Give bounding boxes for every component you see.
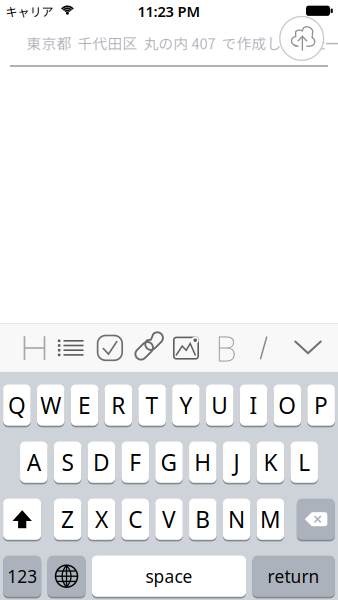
button[interactable]: P [307, 383, 335, 427]
button[interactable] [3, 498, 41, 541]
button[interactable] [297, 498, 335, 541]
staticText: U [211, 390, 228, 420]
staticText: Y [179, 390, 192, 420]
button[interactable]: space [92, 555, 246, 598]
staticText: return [268, 565, 320, 588]
button[interactable]: O [274, 383, 301, 427]
staticText: O [278, 390, 296, 420]
staticText: T [146, 390, 159, 420]
button[interactable]: 123 [3, 555, 41, 598]
staticText: F [129, 447, 141, 477]
button[interactable] [96, 334, 124, 361]
staticText: 11:23 PM [137, 2, 200, 21]
button[interactable] [257, 335, 271, 360]
staticText: E [78, 390, 91, 420]
staticText: I [249, 390, 257, 420]
button[interactable]: R [105, 383, 132, 427]
staticText: Q [8, 390, 26, 420]
button[interactable]: V [155, 498, 183, 541]
button[interactable]: J [223, 441, 250, 484]
button[interactable] [134, 333, 164, 361]
staticText: B [195, 504, 210, 534]
staticText: R [111, 390, 125, 420]
staticText: 東京都 千代田区 丸の内 407 で作成しました [26, 32, 326, 53]
staticText: N [228, 504, 245, 534]
staticText: V [162, 504, 176, 534]
button[interactable] [15, 335, 53, 361]
button[interactable] [280, 16, 324, 60]
button[interactable]: C [121, 498, 149, 541]
staticText: C [128, 504, 142, 534]
staticText: M [260, 504, 281, 534]
button[interactable]: E [71, 383, 98, 427]
button[interactable]: return [252, 555, 335, 598]
staticText: W [40, 390, 61, 420]
staticText: L [298, 447, 310, 477]
staticText: A [27, 447, 41, 477]
button[interactable]: D [88, 441, 115, 484]
button[interactable]: I [240, 383, 267, 427]
button[interactable] [56, 334, 86, 362]
staticText: J [234, 447, 240, 477]
staticText: X [95, 504, 108, 534]
staticText: space [145, 565, 192, 588]
staticText: G [160, 447, 177, 477]
button[interactable]: G [155, 441, 183, 484]
button[interactable]: W [37, 383, 64, 427]
button[interactable]: U [206, 383, 233, 427]
staticText: P [314, 390, 328, 420]
button[interactable]: M [257, 498, 284, 541]
button[interactable]: L [290, 441, 318, 484]
button[interactable] [294, 340, 323, 355]
button[interactable]: Q [3, 383, 31, 427]
button[interactable]: F [121, 441, 149, 484]
staticText: キャリア [5, 3, 53, 20]
staticText: B [215, 325, 236, 371]
button[interactable]: X [88, 498, 115, 541]
button[interactable] [172, 336, 200, 360]
button[interactable]: Z [54, 498, 81, 541]
button[interactable]: N [223, 498, 250, 541]
staticText: 123 [7, 565, 37, 588]
button[interactable]: H [189, 441, 217, 484]
staticText: Z [61, 504, 74, 534]
button[interactable]: K [257, 441, 284, 484]
button[interactable]: T [138, 383, 166, 427]
button[interactable]: A [20, 441, 48, 484]
button[interactable]: Y [172, 383, 200, 427]
staticText: K [263, 447, 277, 477]
button[interactable]: B [189, 498, 217, 541]
staticText: D [93, 447, 110, 477]
button[interactable] [47, 555, 85, 598]
button[interactable]: S [54, 441, 81, 484]
button[interactable]: B [211, 328, 241, 368]
staticText: S [62, 447, 74, 477]
staticText: H [194, 447, 211, 477]
